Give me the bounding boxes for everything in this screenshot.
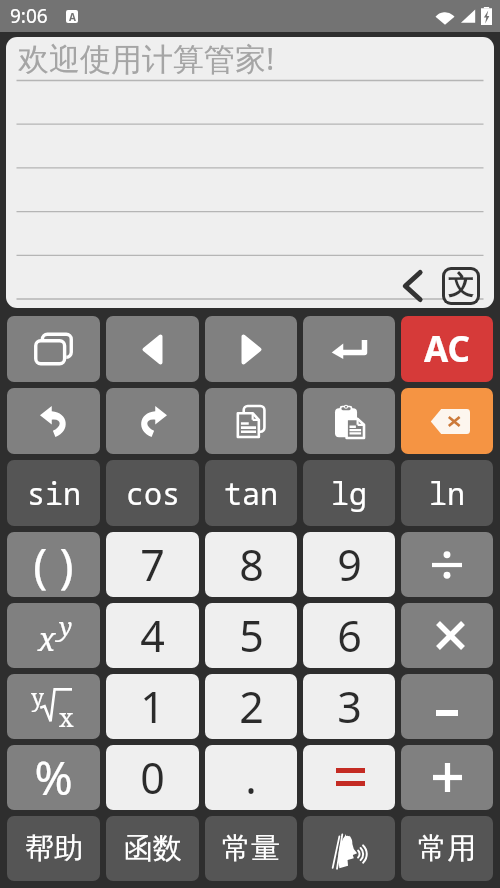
staticText: y [59,609,73,643]
button[interactable]: Redo [106,388,199,454]
button[interactable]: 函数 [106,816,199,881]
button[interactable]: Divide [401,532,493,597]
button[interactable]: 帮助 [7,816,100,881]
staticText: cos [126,473,180,514]
staticText: ln [429,473,465,514]
button[interactable]: y-th root of x [7,674,100,739]
button[interactable]: ( ) [7,532,100,597]
button[interactable]: sin [7,460,100,526]
button[interactable]: Copy [205,388,297,454]
button[interactable]: tan [205,460,297,526]
staticText: 5 [239,606,264,665]
staticText: 9 [337,535,362,594]
staticText: tan [224,473,278,514]
button[interactable]: . [205,745,297,810]
button[interactable]: 6 [303,603,395,668]
staticText: x [38,617,56,661]
button[interactable]: 8 [205,532,297,597]
button[interactable]: 4 [106,603,199,668]
staticText: 8 [239,535,264,594]
button[interactable]: Enter [303,316,395,382]
staticText: 函数 [124,830,182,867]
button[interactable]: Equals [303,745,395,810]
button[interactable]: 7 [106,532,199,597]
button[interactable]: 3 [303,674,395,739]
button[interactable]: AC [401,316,493,382]
button[interactable]: Backspace [401,388,493,454]
button[interactable]: Move left [106,316,199,382]
button[interactable]: Language [442,267,480,305]
button[interactable]: Minus [401,674,493,739]
staticText: 6 [337,606,362,665]
staticText: x [59,700,74,734]
staticText: y [31,681,44,712]
staticText: sin [27,473,81,514]
staticText: 0 [140,748,165,807]
staticText: 欢迎使用计算管家! [18,37,275,79]
button[interactable]: ln [401,460,493,526]
button[interactable]: % [7,745,100,810]
staticText: 9:06 [10,3,48,29]
button[interactable]: Paste [303,388,395,454]
button[interactable]: Back [395,266,429,306]
staticText: . [245,748,257,807]
staticText: 常用 [418,830,476,867]
button[interactable]: 5 [205,603,297,668]
staticText: 3 [337,677,362,736]
button[interactable]: Plus [401,745,493,810]
staticText: ( ) [33,533,74,597]
button[interactable]: 0 [106,745,199,810]
staticText: 文 [448,270,474,301]
staticText: 1 [140,677,165,736]
button[interactable]: 2 [205,674,297,739]
staticText: 7 [140,535,165,594]
staticText: % [34,746,73,809]
button[interactable]: cos [106,460,199,526]
button[interactable]: 常量 [205,816,297,881]
button[interactable]: Multiply [401,603,493,668]
button[interactable]: Voice input [303,816,395,881]
staticText: 2 [239,677,264,736]
button[interactable]: Windows [7,316,100,382]
button[interactable]: 1 [106,674,199,739]
button[interactable]: 常用 [401,816,493,881]
staticText: lg [331,473,367,514]
button[interactable]: x to the power y [7,603,100,668]
button[interactable]: 9 [303,532,395,597]
button[interactable]: Undo [7,388,100,454]
staticText: AC [424,325,470,373]
staticText: A [69,10,76,23]
staticText: 常量 [222,830,280,867]
button[interactable]: lg [303,460,395,526]
staticText: 4 [140,606,165,665]
button[interactable]: Move right [205,316,297,382]
staticText: 帮助 [25,830,83,867]
